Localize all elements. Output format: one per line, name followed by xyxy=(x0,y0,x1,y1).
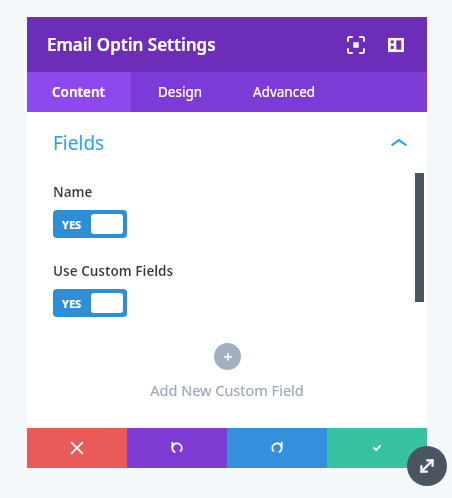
staticText: Advanced xyxy=(253,83,316,101)
button[interactable]: Fullscreen xyxy=(341,30,371,60)
button[interactable]: Resize xyxy=(407,446,447,486)
button[interactable]: Cancel xyxy=(27,428,127,468)
staticText: YES xyxy=(62,296,82,311)
button[interactable]: Fields xyxy=(27,112,427,174)
button[interactable]: Add New Custom Field xyxy=(27,343,427,400)
staticText: Design xyxy=(158,83,203,101)
staticText: Email Optin Settings xyxy=(47,33,216,56)
button[interactable]: Save xyxy=(327,428,427,468)
button[interactable]: Undo xyxy=(127,428,227,468)
button[interactable]: Layout xyxy=(381,30,411,60)
button[interactable]: Advanced xyxy=(229,72,339,112)
staticText: Add New Custom Field xyxy=(150,380,304,400)
button[interactable]: Design xyxy=(131,72,229,112)
staticText: YES xyxy=(62,217,82,232)
button[interactable]: YES xyxy=(53,210,127,238)
staticText: Fields xyxy=(53,130,105,156)
button[interactable]: Content xyxy=(27,72,131,112)
button[interactable]: YES xyxy=(53,289,127,317)
staticText: Content xyxy=(52,83,106,101)
staticText: Name xyxy=(53,183,93,201)
button[interactable]: Redo xyxy=(227,428,327,468)
staticText: Use Custom Fields xyxy=(53,262,174,280)
